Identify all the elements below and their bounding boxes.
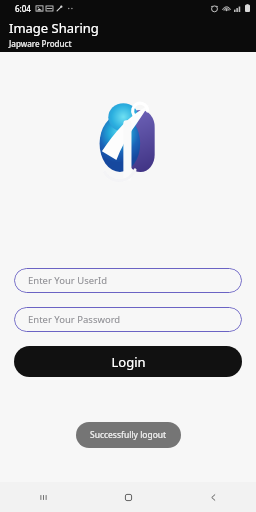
button[interactable]: Home (86, 482, 171, 512)
staticText: 6:04 (15, 3, 31, 14)
staticText: Successfully logout (90, 429, 167, 441)
staticText: Enter Your Password (28, 313, 121, 326)
staticText: Enter Your UserId (28, 274, 108, 287)
button[interactable]: Enter Your UserId (14, 268, 242, 293)
staticText: Login (111, 353, 146, 371)
button[interactable]: Enter Your Password (14, 307, 242, 332)
button[interactable]: Back (171, 482, 256, 512)
button[interactable]: Recent apps (0, 482, 86, 512)
staticText: Image Sharing (9, 19, 99, 37)
staticText: Japware Product (9, 38, 72, 49)
button[interactable]: Login (14, 346, 242, 377)
